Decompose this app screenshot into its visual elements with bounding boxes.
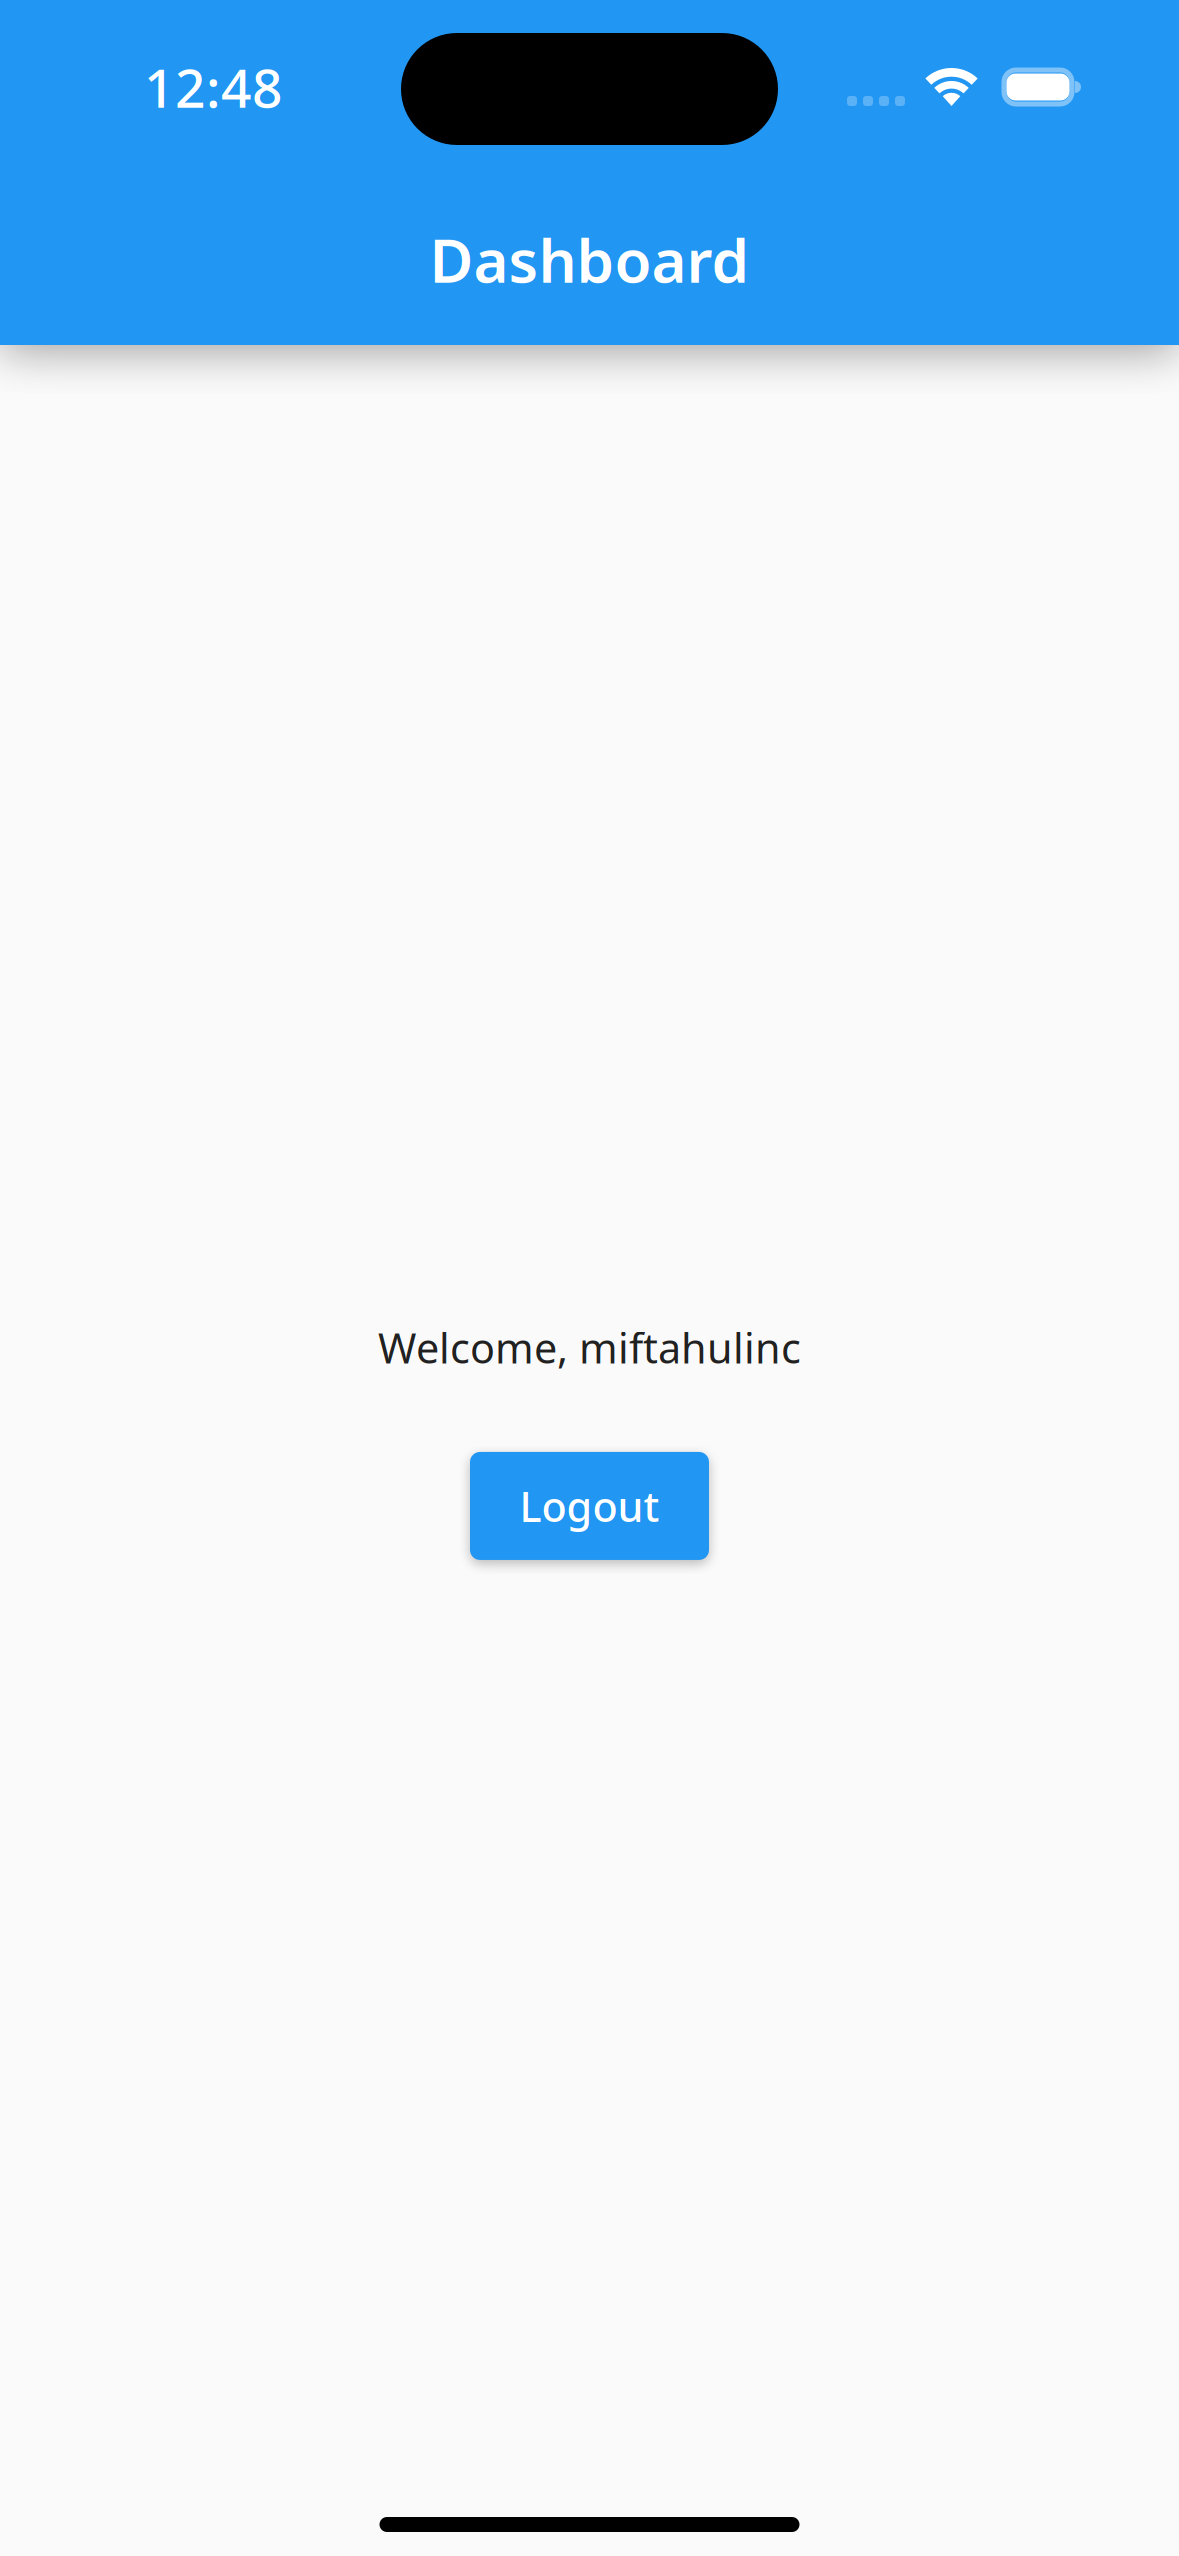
staticText: Dashboard — [429, 220, 749, 299]
staticText: Welcome, miftahulinc — [378, 1320, 801, 1375]
staticText: Logout — [519, 1478, 659, 1533]
button[interactable]: Logout — [470, 1452, 709, 1560]
staticText: 12:48 — [144, 52, 283, 122]
